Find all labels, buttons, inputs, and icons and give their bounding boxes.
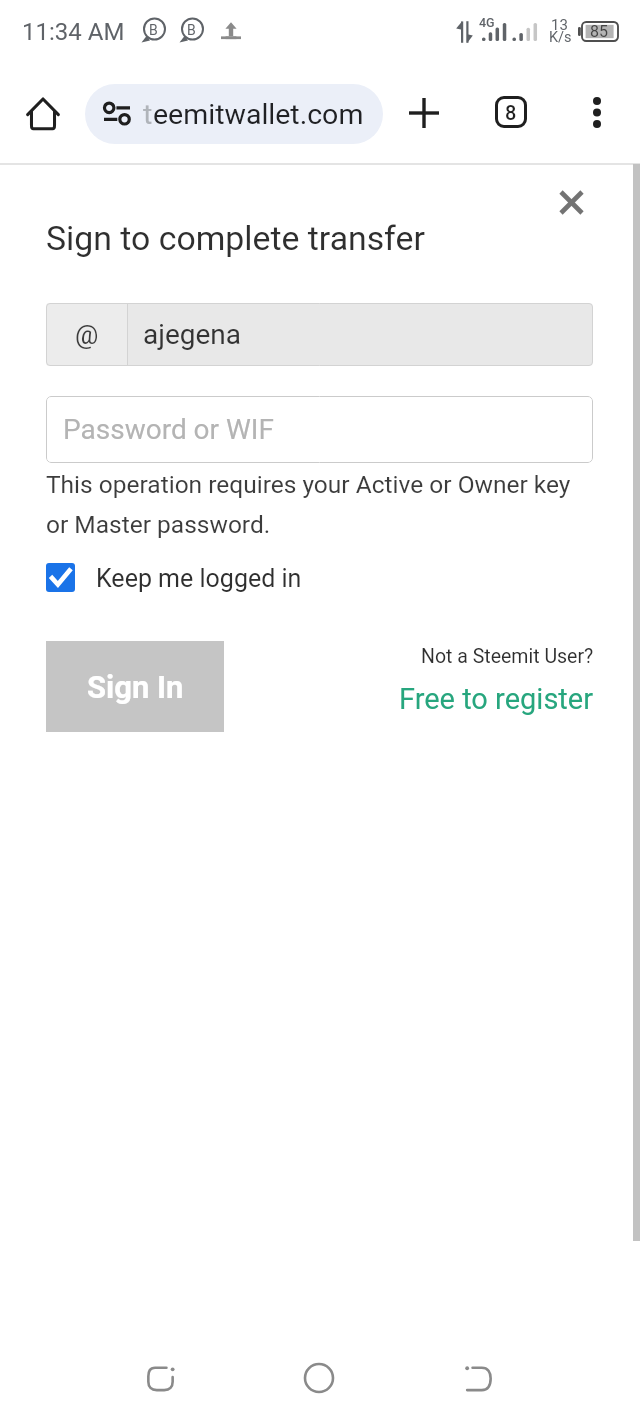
staticText: Sign In: [87, 669, 184, 705]
button[interactable]: t: [85, 84, 383, 144]
staticText: t: [143, 98, 153, 131]
staticText: eemitwallet.com: [153, 98, 364, 131]
button[interactable]: Home: [13, 84, 73, 144]
button[interactable]: Close: [548, 179, 594, 225]
staticText: 4G: [479, 15, 495, 30]
button[interactable]: Free to register: [399, 682, 594, 716]
button[interactable]: Tabs: [482, 83, 540, 141]
button[interactable]: Back: [443, 1343, 513, 1413]
button[interactable]: New tab: [394, 83, 454, 143]
staticText: 85: [590, 22, 608, 41]
staticText: 13: [551, 16, 568, 34]
staticText: ajegena: [143, 318, 242, 351]
button[interactable]: Recent apps: [125, 1343, 195, 1413]
button[interactable]: Home: [284, 1343, 354, 1413]
button[interactable]: Sign In: [46, 641, 224, 732]
staticText: K/s: [549, 29, 572, 46]
staticText: Sign to complete transfer: [46, 219, 425, 259]
staticText: B: [187, 22, 196, 38]
button[interactable]: More options: [568, 83, 626, 141]
staticText: Not a Steemit User?: [421, 645, 594, 668]
staticText: Keep me logged in: [96, 564, 302, 593]
staticText: This operation requires your Active or O…: [46, 470, 571, 539]
staticText: 8: [505, 101, 517, 124]
staticText: 11:34 AM: [22, 18, 125, 46]
staticText: Password or WIF: [63, 413, 274, 446]
button[interactable]: Keep me logged in: [46, 558, 302, 596]
staticText: @: [75, 320, 99, 350]
button[interactable]: Password or WIF: [46, 396, 593, 463]
staticText: B: [149, 22, 158, 38]
